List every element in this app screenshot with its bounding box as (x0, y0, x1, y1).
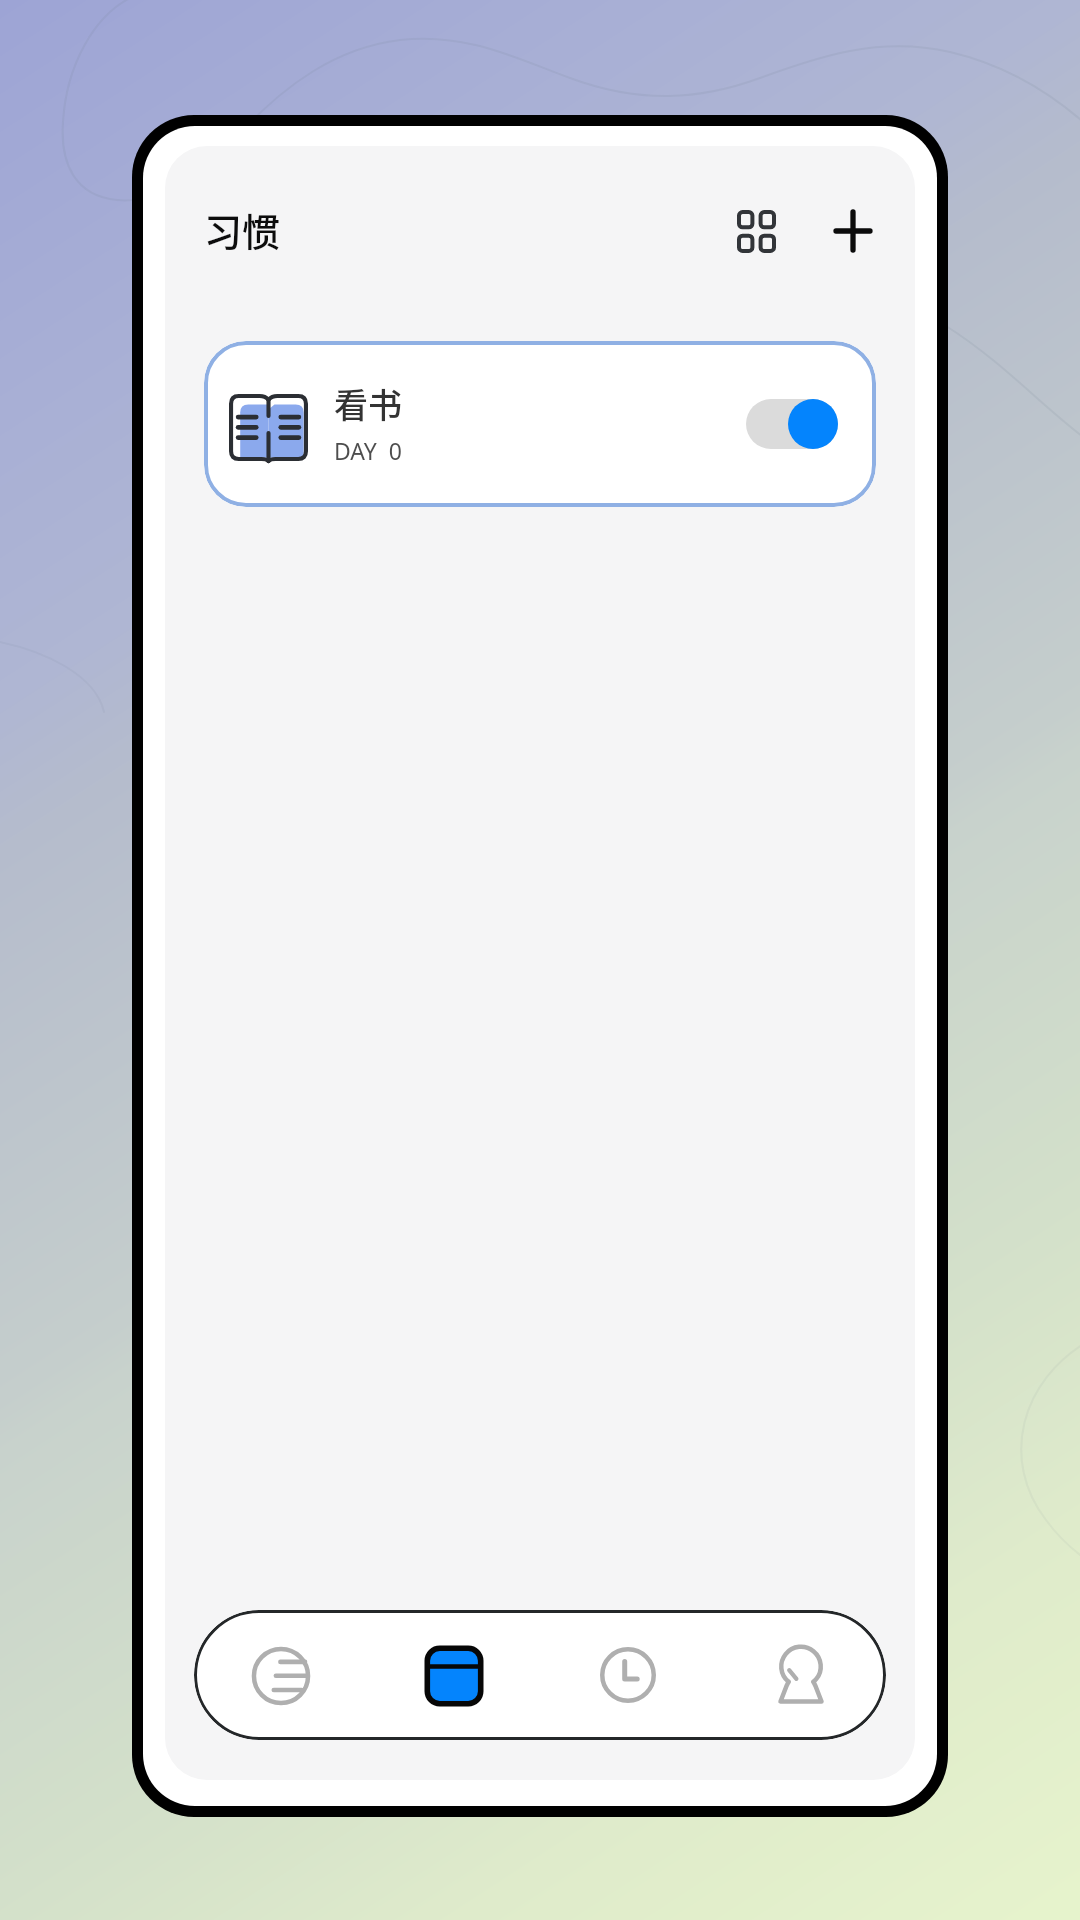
button[interactable]: History (563, 1610, 693, 1740)
button[interactable]: 习惯 (190, 188, 295, 271)
button[interactable]: Profile (736, 1610, 866, 1740)
button[interactable]: Toggle habit (746, 398, 838, 450)
button[interactable]: 看书 (204, 341, 876, 507)
button[interactable]: Grid view (714, 189, 798, 273)
button[interactable]: Habits (389, 1610, 519, 1740)
button[interactable]: Summary (216, 1610, 346, 1740)
button[interactable]: Add habit (811, 189, 895, 273)
staticText: DAY 0 (334, 435, 402, 466)
staticText: 看书 (334, 379, 402, 428)
staticText: 习惯 (204, 202, 281, 257)
